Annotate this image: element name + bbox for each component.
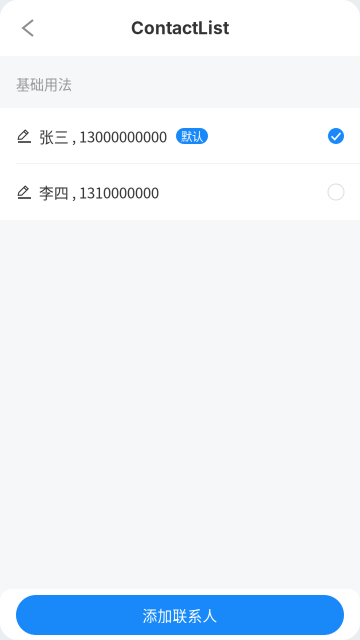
- staticText: ContactList: [131, 17, 229, 38]
- staticText: 李四 , 1310000000: [39, 181, 159, 203]
- button[interactable]: Back: [0, 6, 47, 50]
- staticText: 默认: [181, 128, 203, 144]
- staticText: 基础用法: [16, 73, 72, 94]
- button[interactable]: 张三 , 13000000000: [0, 108, 360, 164]
- staticText: 张三 , 13000000000: [39, 125, 167, 147]
- staticText: 添加联系人: [142, 604, 217, 626]
- button[interactable]: 李四 , 1310000000: [0, 164, 360, 220]
- button[interactable]: 添加联系人: [16, 595, 344, 635]
